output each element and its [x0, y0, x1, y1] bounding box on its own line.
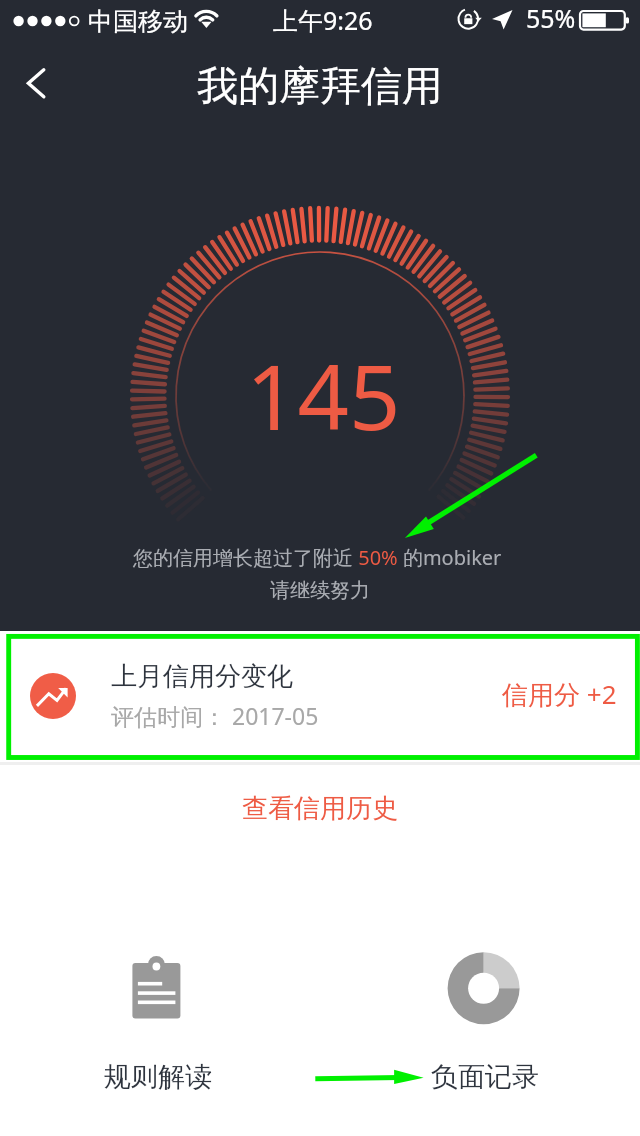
button[interactable]: 负面记录 [403, 940, 563, 1100]
staticText: 请继续努力 [270, 578, 370, 603]
staticText: 规则解读 [104, 1060, 212, 1094]
button[interactable]: 上月信用分变化 [0, 633, 640, 761]
button[interactable]: 规则解读 [77, 940, 237, 1100]
staticText: 上午9:26 [273, 3, 373, 37]
staticText: 信用分 +2 [502, 676, 617, 712]
staticText: 55% [526, 1, 576, 35]
staticText: 查看信用历史 [242, 792, 398, 825]
staticText: 我的摩拜信用 [197, 61, 443, 113]
staticText: 上月信用分变化 [111, 660, 293, 693]
staticText: 您的信用增长超过了附近 50% 的mobiker [133, 544, 502, 571]
staticText: 中国移动 [88, 6, 188, 37]
staticText: 评估时间： 2017-05 [111, 700, 319, 731]
staticText: 负面记录 [431, 1060, 539, 1094]
button[interactable]: Back [8, 53, 68, 113]
staticText: 145 [246, 334, 401, 457]
button[interactable]: 查看信用历史 [212, 784, 428, 833]
